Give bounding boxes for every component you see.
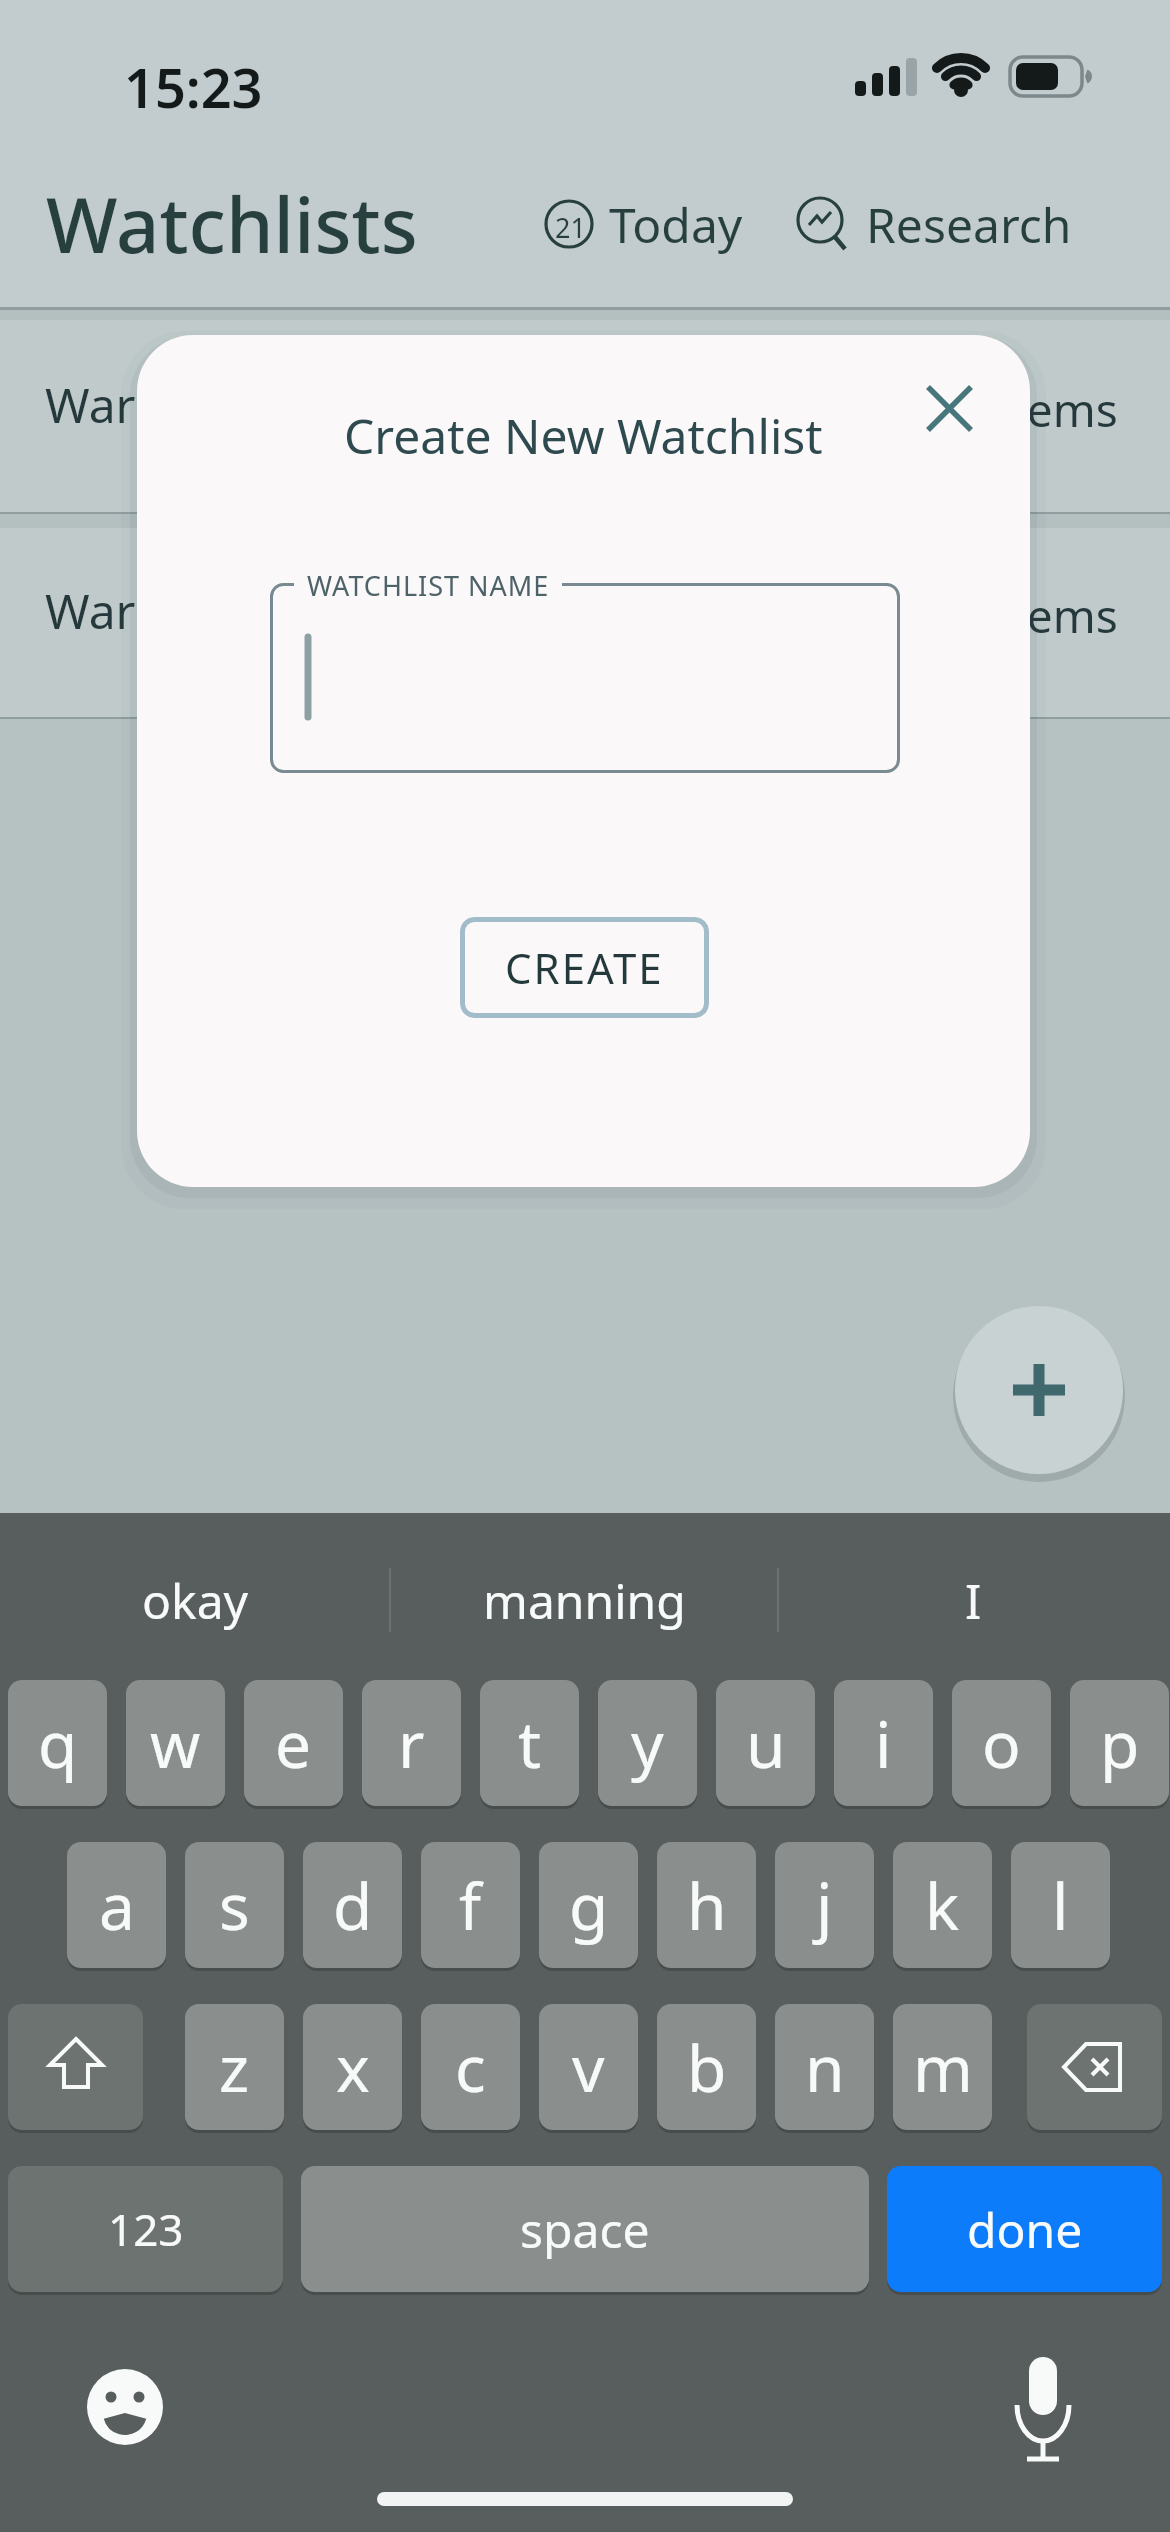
staticText: n: [805, 2024, 845, 2111]
button[interactable]: [85, 2367, 165, 2447]
staticText: 15:23: [124, 50, 263, 124]
button[interactable]: 123: [8, 2166, 283, 2292]
staticText: s: [219, 1862, 250, 1949]
button[interactable]: I: [778, 1560, 1168, 1640]
button[interactable]: [8, 2004, 143, 2130]
button[interactable]: r: [362, 1680, 461, 1806]
staticText: space: [520, 2197, 650, 2262]
button[interactable]: Research: [790, 190, 1080, 260]
staticText: done: [967, 2197, 1083, 2262]
button[interactable]: e: [244, 1680, 343, 1806]
button[interactable]: space: [301, 2166, 869, 2292]
staticText: I: [965, 1568, 982, 1633]
button[interactable]: v: [539, 2004, 638, 2130]
button[interactable]: [955, 1306, 1123, 1474]
button[interactable]: f: [421, 1842, 520, 1968]
button[interactable]: 21: [536, 190, 746, 260]
staticText: k: [925, 1862, 960, 1949]
staticText: i: [875, 1700, 892, 1787]
button[interactable]: [270, 583, 900, 773]
button[interactable]: m: [893, 2004, 992, 2130]
button[interactable]: p: [1070, 1680, 1169, 1806]
button[interactable]: a: [67, 1842, 166, 1968]
button[interactable]: x: [303, 2004, 402, 2130]
staticText: y: [631, 1700, 664, 1787]
staticText: t: [518, 1700, 542, 1787]
staticText: WATCHLIST NAME: [307, 567, 550, 604]
button[interactable]: g: [539, 1842, 638, 1968]
staticText: q: [38, 1700, 78, 1787]
staticText: o: [982, 1700, 1021, 1787]
staticText: d: [333, 1862, 373, 1949]
staticText: h: [687, 1862, 727, 1949]
staticText: b: [687, 2024, 727, 2111]
button[interactable]: q: [8, 1680, 107, 1806]
button[interactable]: d: [303, 1842, 402, 1968]
staticText: manning: [483, 1568, 686, 1633]
button[interactable]: b: [657, 2004, 756, 2130]
staticText: a: [99, 1862, 135, 1949]
staticText: c: [455, 2024, 486, 2111]
button[interactable]: [0, 320, 1170, 512]
button[interactable]: u: [716, 1680, 815, 1806]
staticText: r: [398, 1700, 425, 1787]
button[interactable]: w: [126, 1680, 225, 1806]
staticText: okay: [142, 1568, 249, 1633]
button[interactable]: [1003, 2355, 1083, 2465]
button[interactable]: okay: [0, 1560, 390, 1640]
button[interactable]: n: [775, 2004, 874, 2130]
button[interactable]: CREATE: [460, 917, 709, 1018]
button[interactable]: manning: [390, 1560, 778, 1640]
button[interactable]: [0, 528, 1170, 717]
staticText: e: [275, 1700, 312, 1787]
staticText: u: [746, 1700, 786, 1787]
staticText: m: [913, 2024, 973, 2111]
staticText: z: [219, 2024, 250, 2111]
staticText: Warriors: [45, 372, 240, 437]
staticText: g: [569, 1862, 609, 1949]
button[interactable]: c: [421, 2004, 520, 2130]
button[interactable]: y: [598, 1680, 697, 1806]
staticText: 21: [555, 209, 586, 246]
staticText: f: [459, 1862, 482, 1949]
staticText: l: [1052, 1862, 1069, 1949]
staticText: x: [336, 2024, 370, 2111]
staticText: Create New Watchlist: [344, 403, 823, 468]
staticText: p: [1100, 1700, 1140, 1787]
staticText: Warriors: [45, 578, 240, 643]
button[interactable]: j: [775, 1842, 874, 1968]
button[interactable]: l: [1011, 1842, 1110, 1968]
staticText: 3 items: [960, 378, 1118, 441]
staticText: 3 items: [960, 584, 1118, 647]
staticText: j: [816, 1862, 833, 1949]
staticText: v: [572, 2024, 605, 2111]
button[interactable]: k: [893, 1842, 992, 1968]
button[interactable]: t: [480, 1680, 579, 1806]
button[interactable]: s: [185, 1842, 284, 1968]
button[interactable]: [1027, 2004, 1162, 2130]
staticText: w: [150, 1700, 201, 1787]
button[interactable]: i: [834, 1680, 933, 1806]
staticText: Research: [866, 192, 1072, 257]
staticText: Today: [609, 192, 743, 257]
staticText: CREATE: [505, 939, 664, 996]
staticText: Watchlists: [46, 172, 418, 276]
staticText: 123: [108, 2199, 184, 2259]
button[interactable]: done: [887, 2166, 1162, 2292]
button[interactable]: h: [657, 1842, 756, 1968]
button[interactable]: z: [185, 2004, 284, 2130]
button[interactable]: o: [952, 1680, 1051, 1806]
button[interactable]: [905, 363, 995, 453]
